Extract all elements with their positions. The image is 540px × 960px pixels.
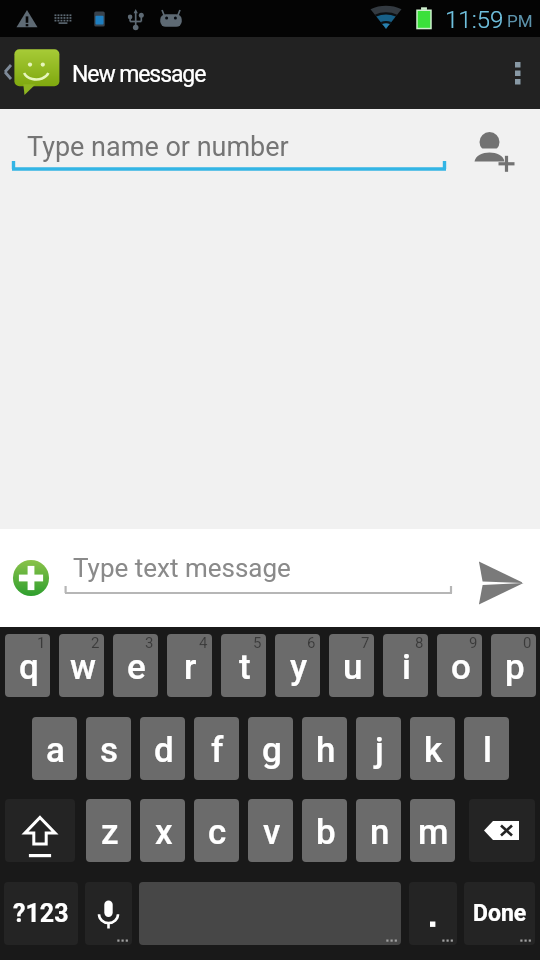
staticText: ?123: [13, 899, 69, 928]
staticText: Done: [473, 900, 527, 927]
button[interactable]: Navigate up: [0, 37, 200, 109]
staticText: w: [70, 647, 96, 688]
staticText: c: [208, 812, 227, 853]
staticText: u: [343, 647, 363, 688]
staticText: PM: [507, 11, 533, 31]
staticText: m: [418, 812, 449, 853]
button[interactable]: i: [383, 634, 428, 697]
staticText: 11:59: [445, 6, 504, 34]
staticText: z: [101, 812, 119, 853]
button[interactable]: f: [194, 717, 239, 780]
staticText: h: [316, 730, 336, 771]
button[interactable]: y: [275, 634, 320, 697]
staticText: q: [19, 647, 39, 688]
button[interactable]: g: [248, 717, 293, 780]
button[interactable]: Add recipient: [456, 109, 540, 197]
staticText: g: [262, 730, 282, 771]
staticText: 4: [199, 634, 208, 652]
button[interactable]: Delete: [469, 799, 535, 862]
button[interactable]: ?123: [4, 882, 78, 945]
button[interactable]: Type name or number: [0, 109, 456, 197]
button[interactable]: w: [59, 634, 104, 697]
other: Navigate up: [0, 37, 66, 109]
button[interactable]: j: [356, 717, 401, 780]
staticText: l: [483, 730, 492, 771]
staticText: 6: [307, 634, 316, 652]
button[interactable]: e: [113, 634, 158, 697]
button[interactable]: v: [248, 799, 293, 862]
button[interactable]: c: [194, 799, 239, 862]
staticText: v: [263, 812, 281, 853]
button[interactable]: t: [221, 634, 266, 697]
staticText: a: [46, 730, 65, 771]
button[interactable]: k: [410, 717, 455, 780]
staticText: t: [239, 647, 251, 688]
staticText: 1: [37, 634, 46, 652]
staticText: Type name or number: [27, 131, 289, 163]
staticText: b: [316, 812, 336, 853]
staticText: y: [290, 647, 308, 688]
button[interactable]: m: [410, 799, 455, 862]
staticText: e: [127, 647, 146, 688]
button[interactable]: p: [491, 634, 536, 697]
button[interactable]: a: [32, 717, 77, 780]
staticText: d: [154, 730, 174, 771]
staticText: k: [424, 730, 443, 771]
staticText: n: [370, 812, 390, 853]
button[interactable]: q: [5, 634, 50, 697]
button[interactable]: h: [302, 717, 347, 780]
staticText: 5: [253, 634, 262, 652]
staticText: New message: [72, 61, 206, 88]
staticText: j: [375, 730, 384, 771]
staticText: 9: [469, 634, 478, 652]
staticText: 3: [145, 634, 154, 652]
button[interactable]: z: [86, 799, 131, 862]
staticText: p: [505, 647, 525, 688]
staticText: 7: [361, 634, 370, 652]
staticText: r: [184, 647, 197, 688]
staticText: 0: [523, 634, 532, 652]
staticText: s: [100, 730, 119, 771]
button[interactable]: l: [464, 717, 509, 780]
button[interactable]: u: [329, 634, 374, 697]
button[interactable]: o: [437, 634, 482, 697]
staticText: 8: [415, 634, 424, 652]
button[interactable]: Period: [409, 882, 457, 945]
button[interactable]: d: [140, 717, 185, 780]
button[interactable]: Type text message: [64, 529, 460, 627]
staticText: i: [402, 647, 411, 688]
button[interactable]: Voice input: [85, 882, 132, 945]
button[interactable]: b: [302, 799, 347, 862]
button[interactable]: Done: [464, 882, 535, 945]
button[interactable]: s: [86, 717, 131, 780]
button[interactable]: Add attachment: [4, 551, 58, 605]
button[interactable]: More options: [496, 37, 540, 109]
button[interactable]: r: [167, 634, 212, 697]
staticText: f: [211, 730, 224, 771]
staticText: x: [155, 812, 173, 853]
button[interactable]: Shift: [5, 799, 75, 862]
staticText: 2: [91, 634, 100, 652]
staticText: Type text message: [73, 553, 291, 583]
button[interactable]: Send: [468, 529, 540, 627]
button[interactable]: x: [140, 799, 185, 862]
staticText: o: [451, 647, 471, 688]
button[interactable]: n: [356, 799, 401, 862]
